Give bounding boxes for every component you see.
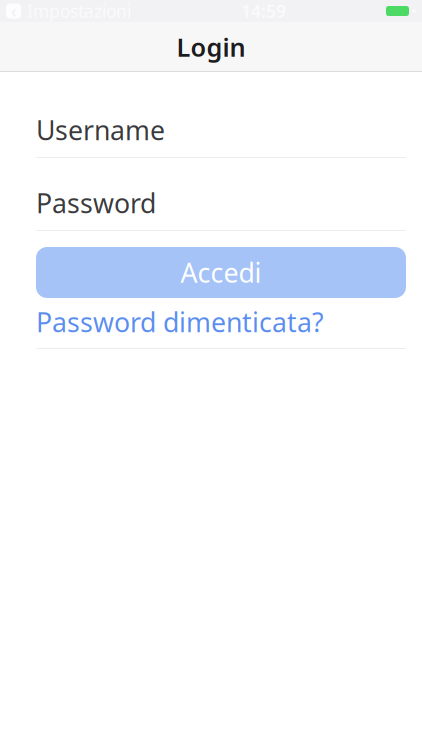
staticText: Password dimenticata? [36, 304, 324, 340]
staticText: ‹ [10, 0, 16, 22]
staticText: Login [176, 30, 245, 64]
staticText: Accedi [180, 255, 261, 290]
staticText: Username [36, 112, 165, 148]
staticText: Password [36, 185, 156, 221]
button[interactable]: Password dimenticata? [36, 304, 406, 340]
button[interactable]: Accedi [36, 247, 406, 298]
